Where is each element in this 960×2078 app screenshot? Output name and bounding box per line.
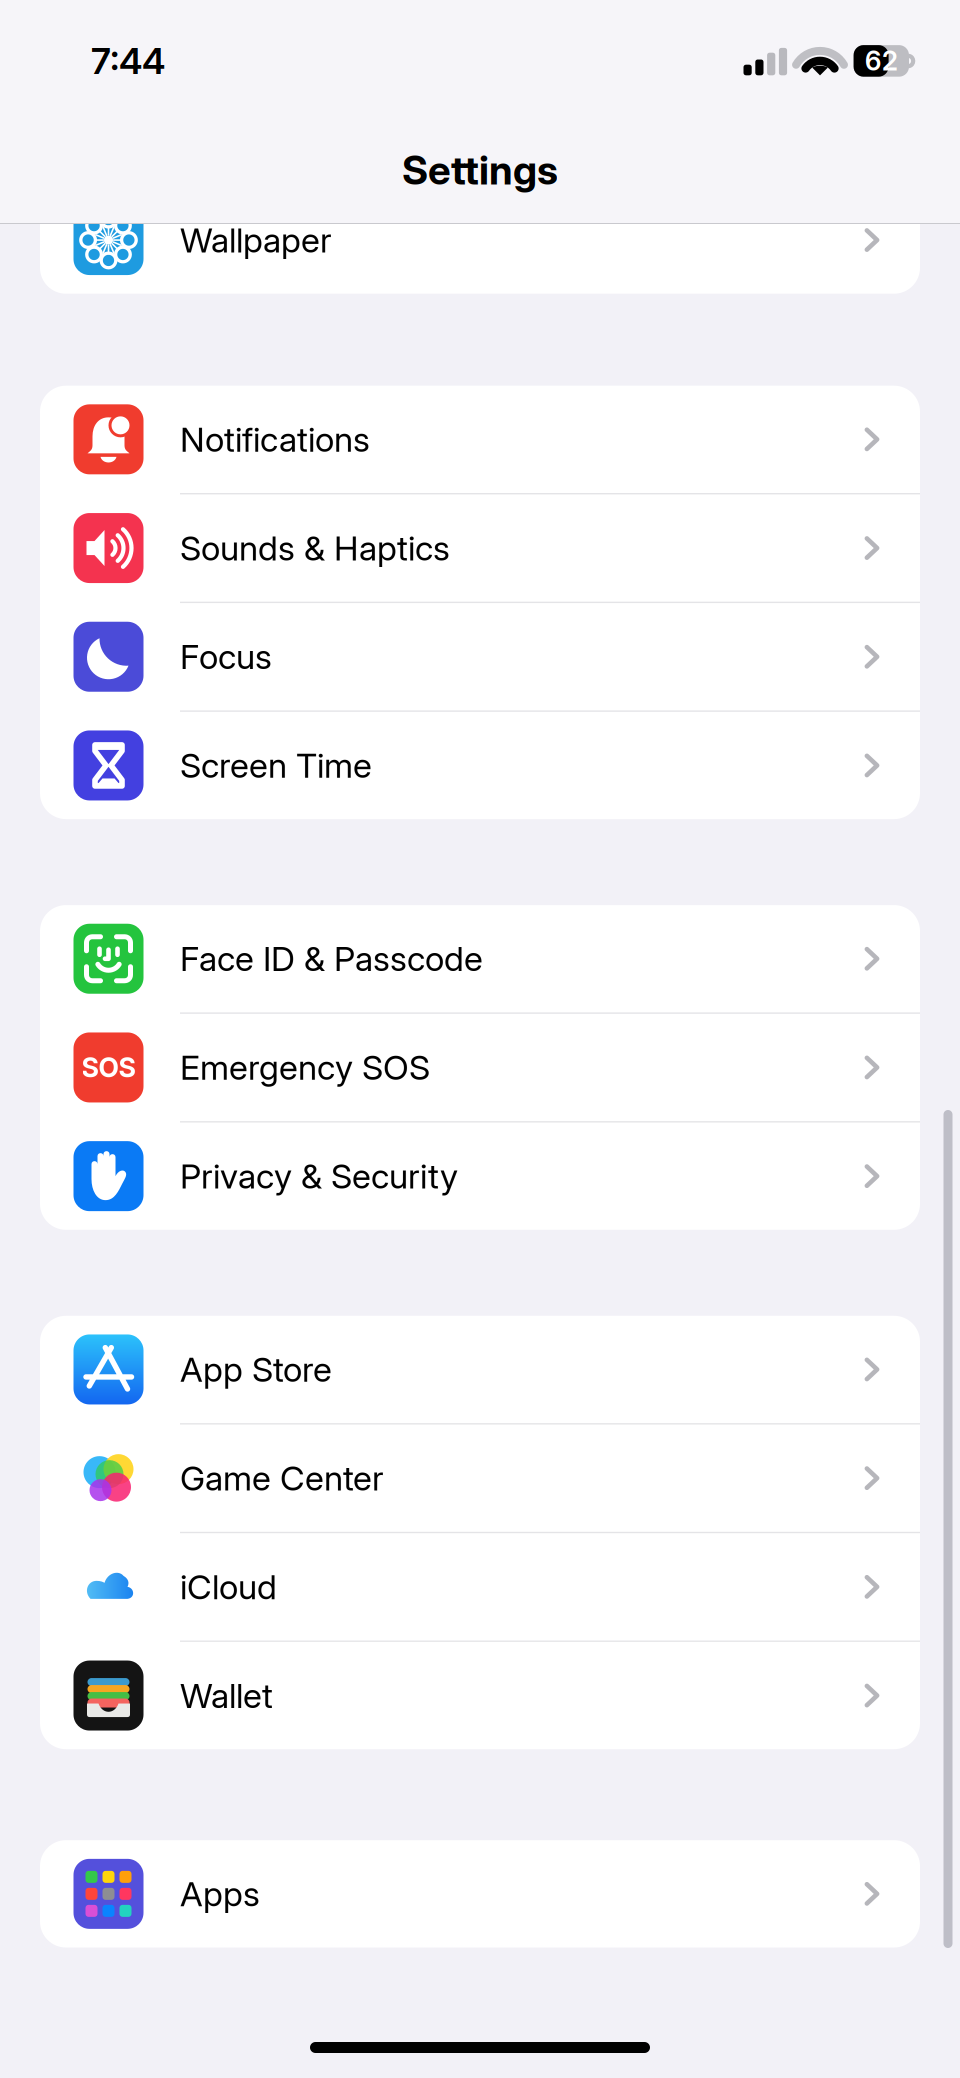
button[interactable]: Focus <box>40 603 920 710</box>
staticText: Notifications <box>180 419 370 460</box>
button[interactable]: Privacy & Security <box>40 1122 920 1230</box>
button[interactable]: Apps <box>40 1840 920 1947</box>
staticText: Game Center <box>180 1458 384 1499</box>
staticText: Apps <box>180 1873 260 1914</box>
button[interactable]: SOS <box>40 1014 920 1121</box>
button[interactable]: Wallpaper <box>40 186 920 294</box>
button[interactable]: App Store <box>40 1316 920 1423</box>
staticText: App Store <box>180 1349 332 1390</box>
staticText: Emergency SOS <box>180 1047 430 1088</box>
staticText: Wallpaper <box>180 219 332 261</box>
button[interactable]: Sounds & Haptics <box>40 494 920 602</box>
staticText: Wallet <box>180 1675 273 1716</box>
staticText: SOS <box>81 1051 135 1084</box>
staticText: Screen Time <box>180 745 372 786</box>
staticText: Settings <box>402 146 558 194</box>
button[interactable]: iCloud <box>40 1533 920 1640</box>
staticText: Face ID & Passcode <box>180 938 483 979</box>
button[interactable]: Game Center <box>40 1424 920 1532</box>
staticText: 62 <box>865 45 898 77</box>
staticText: 7:44 <box>91 39 165 83</box>
button[interactable]: Face ID & Passcode <box>40 905 920 1012</box>
staticText: Focus <box>180 636 272 677</box>
button[interactable]: Wallet <box>40 1642 920 1749</box>
button[interactable]: Notifications <box>40 386 920 493</box>
staticText: Privacy & Security <box>180 1156 458 1197</box>
button[interactable]: Screen Time <box>40 712 920 819</box>
staticText: iCloud <box>180 1566 277 1607</box>
staticText: Sounds & Haptics <box>180 527 450 569</box>
